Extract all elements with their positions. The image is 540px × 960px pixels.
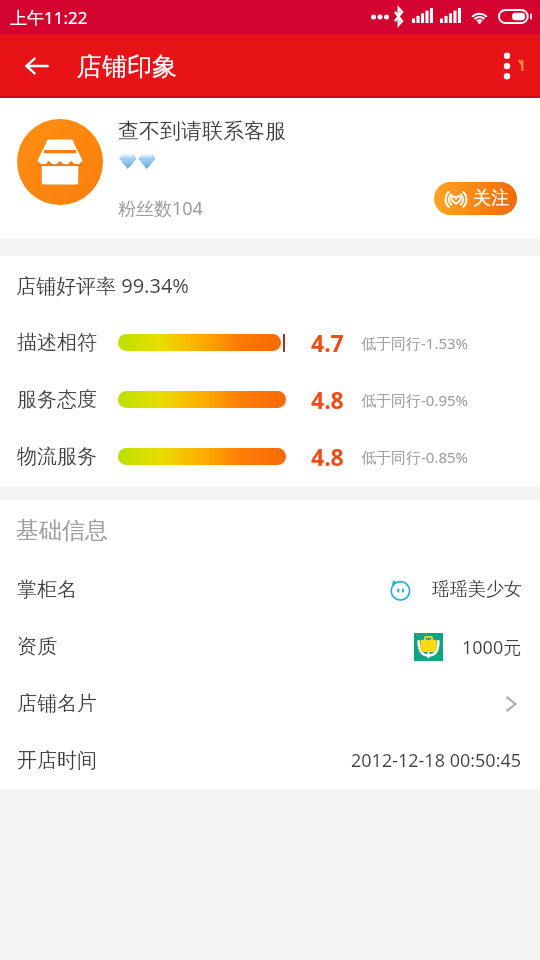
staticText: 4.8 <box>311 384 344 415</box>
staticText: 物流服务 <box>17 444 97 469</box>
staticText: 2012-12-18 00:50:45 <box>351 748 522 773</box>
staticText: 瑶瑶美少女 <box>432 578 522 601</box>
button[interactable]: 掌柜名 <box>0 561 540 618</box>
button[interactable]: Back <box>0 34 74 98</box>
staticText: 描述相符 <box>17 330 97 355</box>
staticText: 资质 <box>17 634 57 659</box>
button[interactable]: 服务态度 <box>0 371 540 428</box>
staticText: 基础信息 <box>16 516 108 545</box>
staticText: 4.7 <box>311 327 344 358</box>
button[interactable]: 关注 <box>434 182 517 215</box>
staticText: 开店时间 <box>17 748 97 773</box>
staticText: 低于同行-0.85% <box>361 447 469 467</box>
button[interactable]: 物流服务 <box>0 428 540 485</box>
button[interactable]: More options <box>485 34 529 98</box>
button[interactable]: 开店时间 <box>0 732 540 789</box>
button[interactable]: 描述相符 <box>0 314 540 371</box>
staticText: 低于同行-0.95% <box>361 390 469 410</box>
staticText: 上午11:22 <box>10 6 88 29</box>
staticText: 关注 <box>473 187 509 210</box>
staticText: 掌柜名 <box>17 577 77 602</box>
staticText: 查不到请联系客服 <box>118 118 286 144</box>
button[interactable]: Shop avatar <box>17 119 103 205</box>
button[interactable]: 资质 <box>0 618 540 675</box>
button[interactable]: 店铺名片 <box>0 675 540 732</box>
staticText: 低于同行-1.53% <box>361 333 469 353</box>
staticText: 粉丝数104 <box>118 196 203 221</box>
staticText: 店铺印象 <box>77 51 177 82</box>
staticText: 店铺名片 <box>17 691 97 716</box>
staticText: 服务态度 <box>17 387 97 412</box>
staticText: 店铺好评率 99.34% <box>16 272 189 299</box>
other: Open shop card <box>500 693 522 715</box>
staticText: 1000元 <box>462 635 522 660</box>
staticText: 4.8 <box>311 441 344 472</box>
